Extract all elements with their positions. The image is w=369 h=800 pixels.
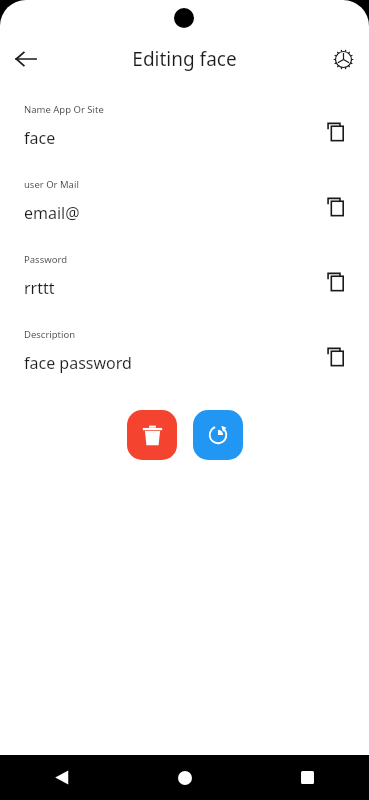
staticText: face password	[24, 352, 132, 374]
button[interactable]: user Or Mail	[0, 175, 369, 235]
staticText: Password	[24, 253, 67, 266]
staticText: Description	[24, 328, 76, 341]
button[interactable]: Password	[0, 250, 369, 310]
staticText: face	[24, 127, 56, 149]
button[interactable]: Update	[193, 410, 243, 460]
button[interactable]: Description	[0, 325, 369, 385]
staticText: user Or Mail	[24, 178, 79, 191]
staticText: email@	[24, 202, 80, 224]
button[interactable]: Settings	[324, 40, 362, 78]
button[interactable]: Back	[0, 755, 123, 800]
button[interactable]: Name App Or Site	[0, 100, 369, 160]
button[interactable]: Copy Description	[323, 344, 349, 370]
staticText: rrttt	[24, 277, 55, 299]
button[interactable]: Copy user Or Mail	[323, 194, 349, 220]
button[interactable]: Copy Name App Or Site	[323, 119, 349, 145]
button[interactable]: Home	[123, 755, 246, 800]
staticText: Name App Or Site	[24, 103, 104, 116]
button[interactable]: Recent apps	[246, 755, 369, 800]
button[interactable]: Copy Password	[323, 269, 349, 295]
button[interactable]: Delete	[127, 410, 177, 460]
staticText: Editing face	[132, 46, 237, 72]
button[interactable]: Back	[7, 40, 45, 78]
